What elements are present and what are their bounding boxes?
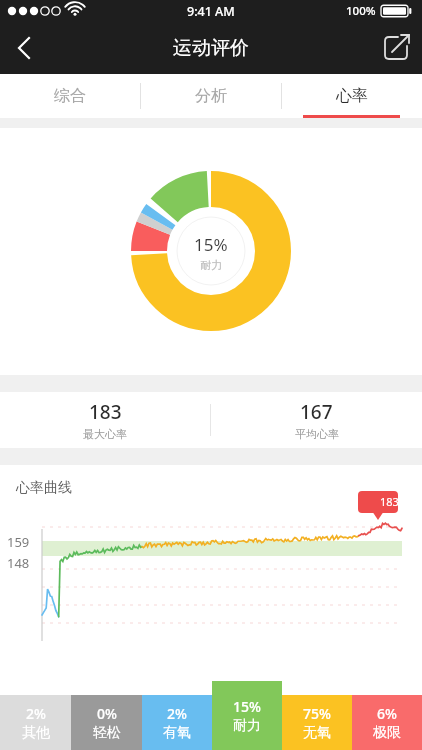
staticText: 167 [300, 399, 333, 425]
button[interactable]: 2% [142, 695, 212, 750]
staticText: 心率曲线 [16, 479, 72, 497]
staticText: 运动评价 [173, 36, 249, 60]
staticText: 心率 [336, 86, 368, 106]
staticText: 轻松 [93, 724, 121, 742]
button[interactable]: 2% [0, 695, 71, 750]
staticText: 最大心率 [83, 427, 127, 441]
staticText: 159 [7, 533, 30, 551]
button[interactable]: 75% [282, 695, 352, 750]
staticText: 耐力 [233, 717, 261, 735]
staticText: 2% [26, 704, 46, 723]
button[interactable]: 心率 [281, 74, 422, 118]
staticText: 183 [89, 399, 122, 425]
button[interactable]: 183 [0, 392, 210, 448]
staticText: 分析 [195, 86, 227, 106]
button[interactable]: 15% [212, 681, 282, 750]
staticText: 6% [377, 704, 397, 723]
staticText: 15% [194, 233, 228, 256]
staticText: 148 [7, 554, 30, 572]
staticText: 平均心率 [295, 427, 339, 441]
button[interactable]: 分析 [140, 74, 281, 118]
staticText: 0% [97, 704, 117, 723]
button[interactable]: 6% [352, 695, 422, 750]
staticText: 极限 [373, 724, 401, 742]
staticText: 无氧 [303, 724, 331, 742]
button[interactable]: 综合 [0, 74, 140, 118]
staticText: 9:41 AM [187, 3, 235, 20]
button[interactable]: Back [0, 22, 52, 74]
staticText: 耐力 [200, 258, 222, 272]
staticText: 综合 [54, 86, 86, 106]
staticText: 75% [303, 704, 331, 723]
staticText: 有氧 [163, 724, 191, 742]
staticText: 183 [380, 494, 399, 509]
staticText: 100% [346, 3, 376, 19]
staticText: 2% [167, 704, 187, 723]
staticText: 其他 [22, 724, 50, 742]
button[interactable]: Share [370, 22, 422, 74]
button[interactable]: 167 [211, 392, 422, 448]
staticText: 15% [233, 697, 261, 716]
button[interactable]: 0% [71, 695, 142, 750]
